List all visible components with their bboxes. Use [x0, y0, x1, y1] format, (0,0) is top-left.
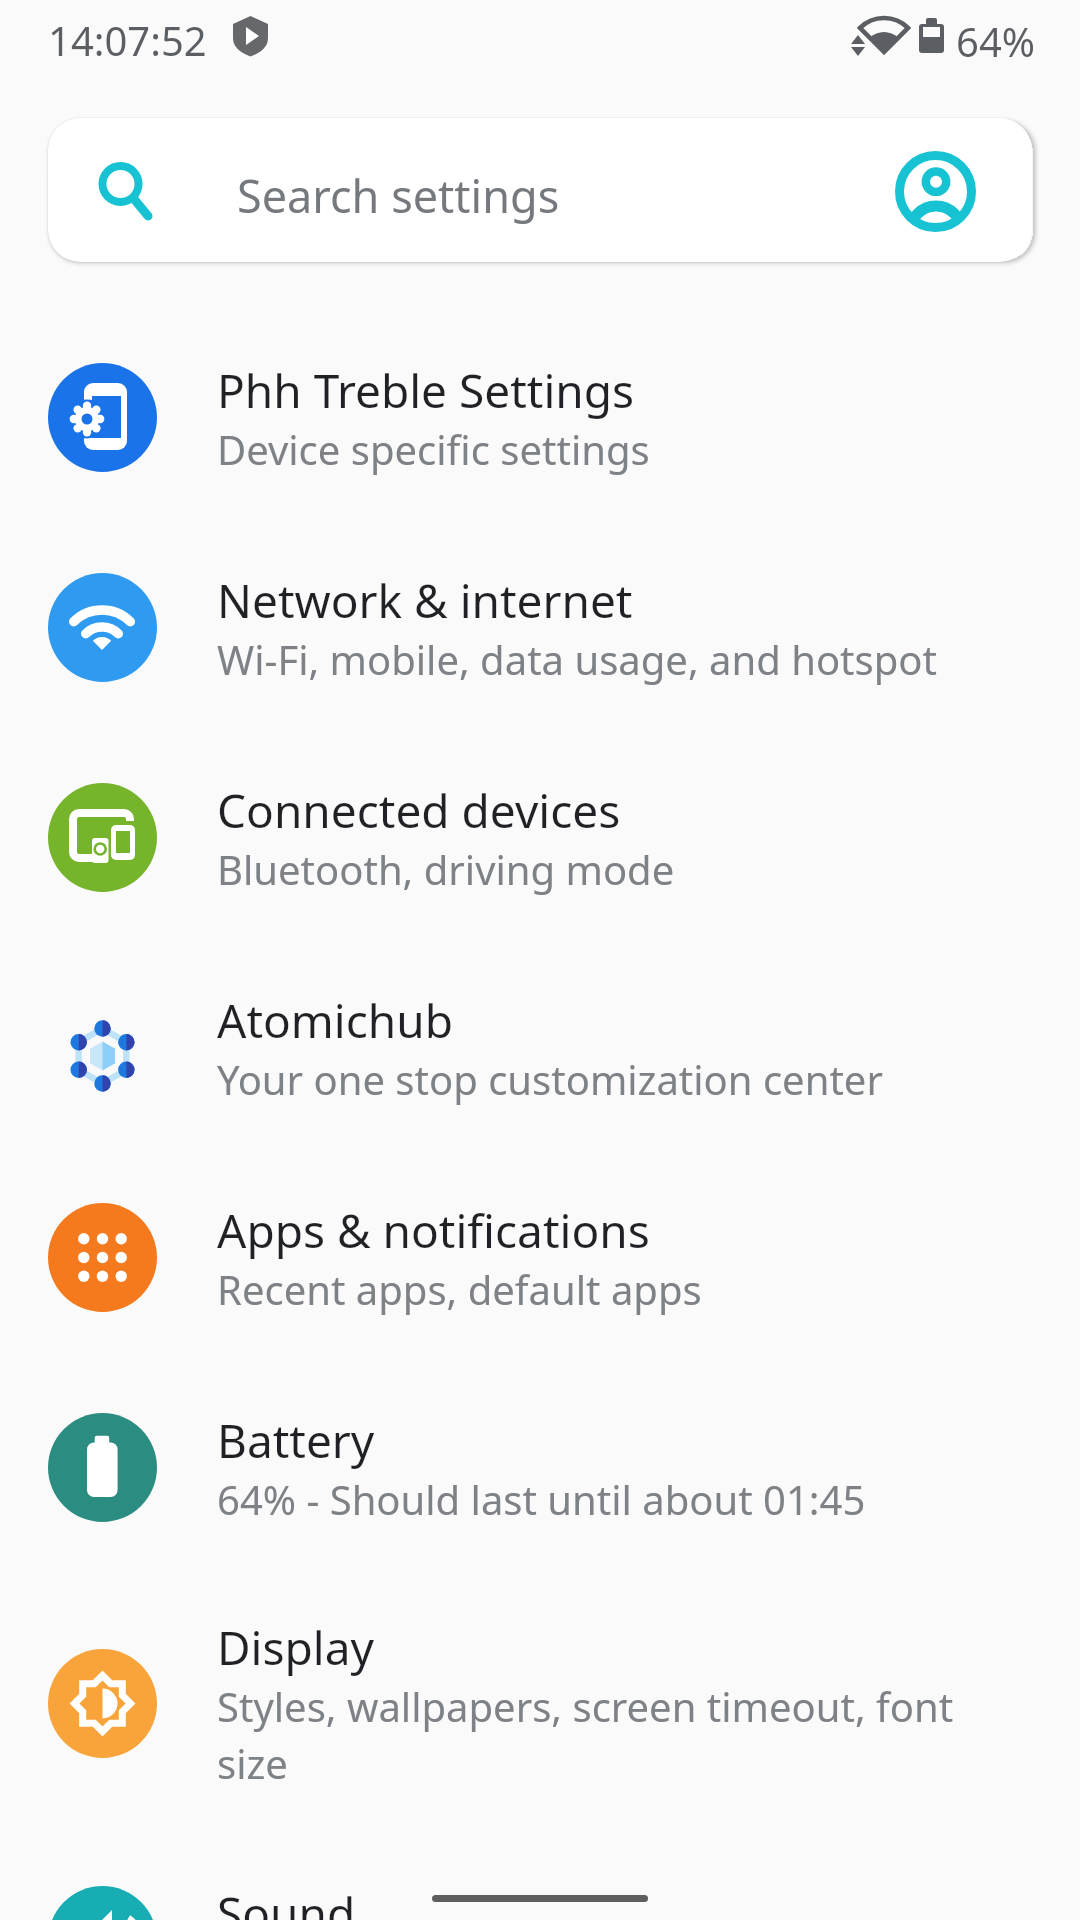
staticText: Search settings — [237, 165, 560, 226]
button[interactable]: Atomichub — [0, 962, 1080, 1132]
staticText: Network & internet — [217, 569, 633, 632]
button[interactable]: Phh Treble Settings — [0, 332, 1080, 502]
button[interactable]: Network & internet — [0, 542, 1080, 712]
staticText: Battery — [217, 1409, 375, 1472]
staticText: Bluetooth, driving mode — [217, 842, 675, 896]
staticText: 64% — [956, 14, 1035, 68]
staticText: 64% - Should last until about 01:45 — [217, 1472, 866, 1526]
button[interactable]: Battery — [0, 1382, 1080, 1552]
button[interactable]: Display — [0, 1590, 1080, 1816]
staticText: Sound — [217, 1882, 356, 1920]
staticText: Device specific settings — [217, 422, 650, 476]
staticText: Your one stop customization center — [217, 1052, 883, 1106]
staticText: Connected devices — [217, 779, 621, 842]
button[interactable]: Connected devices — [0, 752, 1080, 922]
button[interactable]: Apps & notifications — [0, 1172, 1080, 1342]
button[interactable]: Sound — [0, 1855, 1080, 1920]
staticText: Display — [217, 1616, 374, 1679]
staticText: 14:07:52 — [48, 13, 207, 67]
staticText: Atomichub — [217, 989, 453, 1052]
staticText: Phh Treble Settings — [217, 359, 635, 422]
staticText: Styles, wallpapers, screen timeout, font… — [217, 1679, 954, 1790]
staticText: Recent apps, default apps — [217, 1262, 702, 1316]
staticText: Wi-Fi, mobile, data usage, and hotspot — [217, 632, 937, 686]
button[interactable]: Search settings — [48, 118, 1032, 262]
staticText: Apps & notifications — [217, 1199, 650, 1262]
